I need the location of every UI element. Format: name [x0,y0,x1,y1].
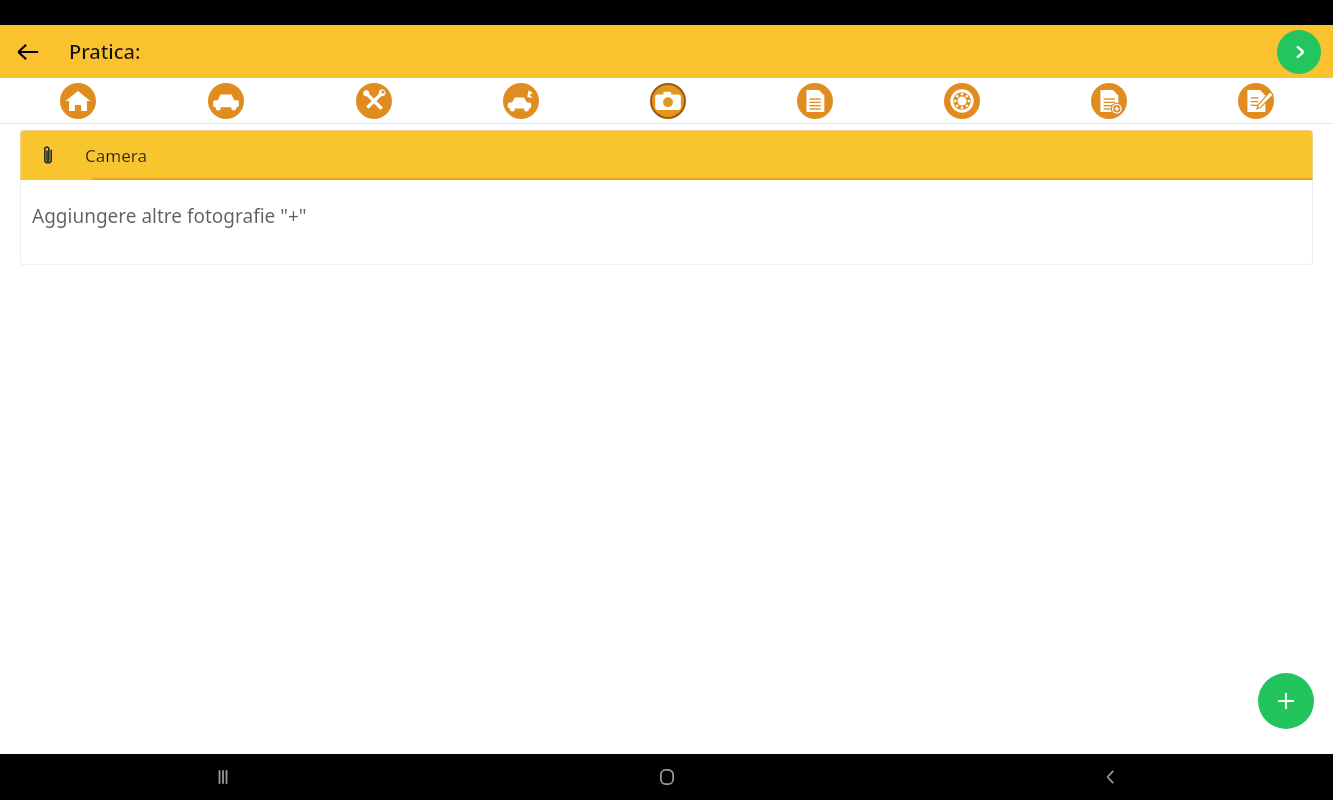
button[interactable]: Add document [1035,78,1182,124]
button[interactable]: Vehicle damage [447,78,594,124]
button[interactable]: Recent apps [0,754,445,800]
staticText: Aggiungere altre fotografie "+" [32,203,307,229]
staticText: Pratica: [69,38,141,65]
button[interactable]: Tools [300,78,447,124]
button[interactable]: Sign document [1182,78,1329,124]
button[interactable]: Home [4,78,152,124]
button[interactable]: Add [1258,673,1314,729]
button[interactable]: Document [741,78,888,124]
button[interactable]: Vehicle [152,78,300,124]
button[interactable]: Next [1277,30,1321,74]
staticText: Camera [85,144,147,167]
button[interactable]: Tyre [888,78,1035,124]
button[interactable]: Camera [20,130,1313,180]
button[interactable]: Aggiungere altre fotografie "+" [20,180,1313,265]
button[interactable]: Camera [594,78,741,124]
button[interactable]: Back [889,754,1333,800]
button[interactable]: Back [8,32,48,72]
button[interactable]: Home [445,754,889,800]
